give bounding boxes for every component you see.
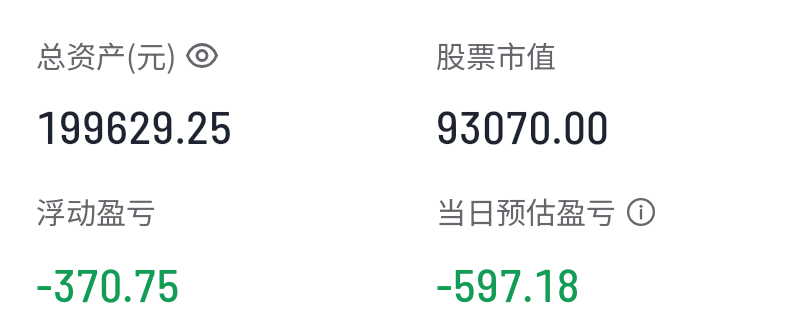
- button[interactable]: 当日预估盈亏: [436, 189, 655, 232]
- staticText: 总资产(元): [36, 33, 177, 76]
- staticText: 股票市值: [436, 33, 556, 76]
- button[interactable]: 浮动盈亏: [36, 189, 156, 232]
- staticText: 当日预估盈亏: [436, 189, 616, 232]
- button[interactable]: 199629.25: [36, 98, 233, 153]
- button[interactable]: Hide total assets: [186, 43, 218, 68]
- button[interactable]: -370.75: [36, 256, 180, 311]
- button[interactable]: 股票市值: [436, 33, 556, 76]
- staticText: 浮动盈亏: [36, 189, 156, 232]
- staticText: -597.18: [436, 256, 580, 311]
- staticText: 199629.25: [36, 98, 233, 153]
- staticText: 93070.00: [436, 98, 610, 153]
- button[interactable]: -597.18: [436, 256, 580, 311]
- staticText: -370.75: [36, 256, 180, 311]
- button[interactable]: About estimated daily profit: [627, 198, 655, 226]
- button[interactable]: 总资产(元): [36, 33, 218, 76]
- button[interactable]: 93070.00: [436, 98, 610, 153]
